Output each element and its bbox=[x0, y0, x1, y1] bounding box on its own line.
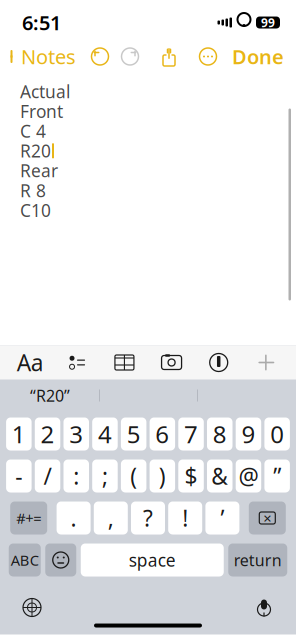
staticText: 6 bbox=[155, 418, 169, 450]
staticText: / bbox=[43, 461, 51, 491]
button[interactable]: $ bbox=[178, 459, 204, 492]
button[interactable]: , bbox=[94, 501, 128, 534]
button[interactable]: ! bbox=[168, 501, 202, 534]
staticText: “R20” bbox=[30, 385, 70, 406]
button[interactable]: / bbox=[35, 459, 60, 492]
button[interactable]: 5 bbox=[121, 417, 146, 450]
button[interactable]: #+= bbox=[10, 501, 47, 534]
button[interactable]: & bbox=[207, 459, 232, 492]
button[interactable]: Redo bbox=[115, 42, 145, 70]
staticText: ) bbox=[159, 461, 166, 491]
button[interactable]: - bbox=[6, 459, 32, 492]
staticText: C 4 bbox=[20, 119, 46, 142]
staticText: & bbox=[211, 461, 228, 491]
button[interactable]: Emoji bbox=[45, 543, 76, 576]
staticText: - bbox=[15, 461, 22, 491]
staticText: Aa bbox=[17, 347, 44, 377]
button[interactable]: Delete bbox=[249, 501, 286, 534]
button[interactable]: More options bbox=[193, 42, 223, 70]
button[interactable]: 4 bbox=[92, 417, 118, 450]
staticText: Done bbox=[232, 43, 284, 70]
button[interactable]: 0 bbox=[264, 417, 290, 450]
button[interactable]: ’ bbox=[205, 501, 239, 534]
staticText: ! bbox=[182, 503, 188, 533]
button[interactable]: : bbox=[63, 459, 89, 492]
staticText: ? bbox=[143, 503, 153, 533]
staticText: , bbox=[108, 503, 114, 533]
button[interactable]: 3 bbox=[63, 417, 89, 450]
button[interactable]: 2 bbox=[35, 417, 60, 450]
button[interactable]: Table bbox=[107, 347, 141, 377]
button[interactable]: 8 bbox=[207, 417, 232, 450]
button[interactable]: Undo bbox=[85, 42, 115, 70]
button[interactable]: ” bbox=[264, 459, 290, 492]
button[interactable]: 6 bbox=[150, 417, 175, 450]
staticText: ABC bbox=[11, 550, 39, 570]
staticText: ” bbox=[273, 461, 281, 491]
staticText: 0 bbox=[270, 418, 284, 450]
button[interactable]: Share bbox=[154, 42, 184, 71]
staticText: space bbox=[129, 548, 176, 571]
staticText: Notes bbox=[21, 43, 76, 70]
button[interactable]: “R20” bbox=[1, 379, 99, 411]
staticText: 4 bbox=[98, 418, 112, 450]
button[interactable]: Dictate bbox=[246, 591, 282, 623]
button[interactable]: ; bbox=[92, 459, 118, 492]
staticText: Rear bbox=[20, 159, 58, 182]
staticText: 7 bbox=[184, 418, 198, 450]
button[interactable]: Switch keyboard bbox=[14, 591, 50, 623]
button[interactable]: 9 bbox=[236, 417, 261, 450]
button[interactable]: ) bbox=[150, 459, 175, 492]
staticText: @ bbox=[238, 461, 258, 491]
staticText: Front bbox=[20, 100, 63, 123]
button[interactable]: Camera bbox=[155, 347, 189, 377]
button[interactable]: @ bbox=[236, 459, 261, 492]
staticText: $ bbox=[184, 461, 197, 491]
staticText: 2 bbox=[40, 418, 54, 450]
staticText: R20 bbox=[20, 139, 51, 162]
button[interactable]: Text format bbox=[13, 347, 47, 377]
button[interactable]: Done bbox=[232, 37, 296, 76]
staticText: ’ bbox=[220, 503, 224, 533]
button[interactable]: space bbox=[81, 543, 224, 576]
staticText: × bbox=[263, 508, 271, 528]
staticText: 3 bbox=[69, 418, 83, 450]
button[interactable]: Notes bbox=[0, 37, 76, 76]
staticText: 99 bbox=[261, 14, 275, 30]
button[interactable]: ABC bbox=[9, 543, 41, 576]
staticText: ; bbox=[102, 461, 108, 491]
staticText: 9 bbox=[241, 418, 255, 450]
staticText: C10 bbox=[20, 199, 51, 222]
staticText: 6:51 bbox=[22, 9, 61, 36]
staticText: . bbox=[71, 503, 77, 533]
button[interactable]: Checklist bbox=[60, 347, 94, 377]
staticText: R 8 bbox=[20, 179, 46, 202]
staticText: 1 bbox=[12, 418, 26, 450]
button[interactable]: ( bbox=[121, 459, 146, 492]
staticText: #+= bbox=[16, 508, 41, 528]
button[interactable]: . bbox=[57, 501, 91, 534]
staticText: ( bbox=[130, 461, 137, 491]
button[interactable]: 1 bbox=[6, 417, 32, 450]
staticText: Actual bbox=[20, 80, 70, 103]
button[interactable]: 7 bbox=[178, 417, 204, 450]
button[interactable]: return bbox=[228, 543, 287, 576]
staticText: return bbox=[234, 549, 282, 571]
staticText: 5 bbox=[127, 418, 141, 450]
staticText: 8 bbox=[213, 418, 227, 450]
button[interactable]: Markup bbox=[202, 347, 236, 377]
staticText: : bbox=[73, 461, 79, 491]
button[interactable]: Close keyboard bbox=[249, 347, 283, 377]
button[interactable]: ? bbox=[131, 501, 165, 534]
